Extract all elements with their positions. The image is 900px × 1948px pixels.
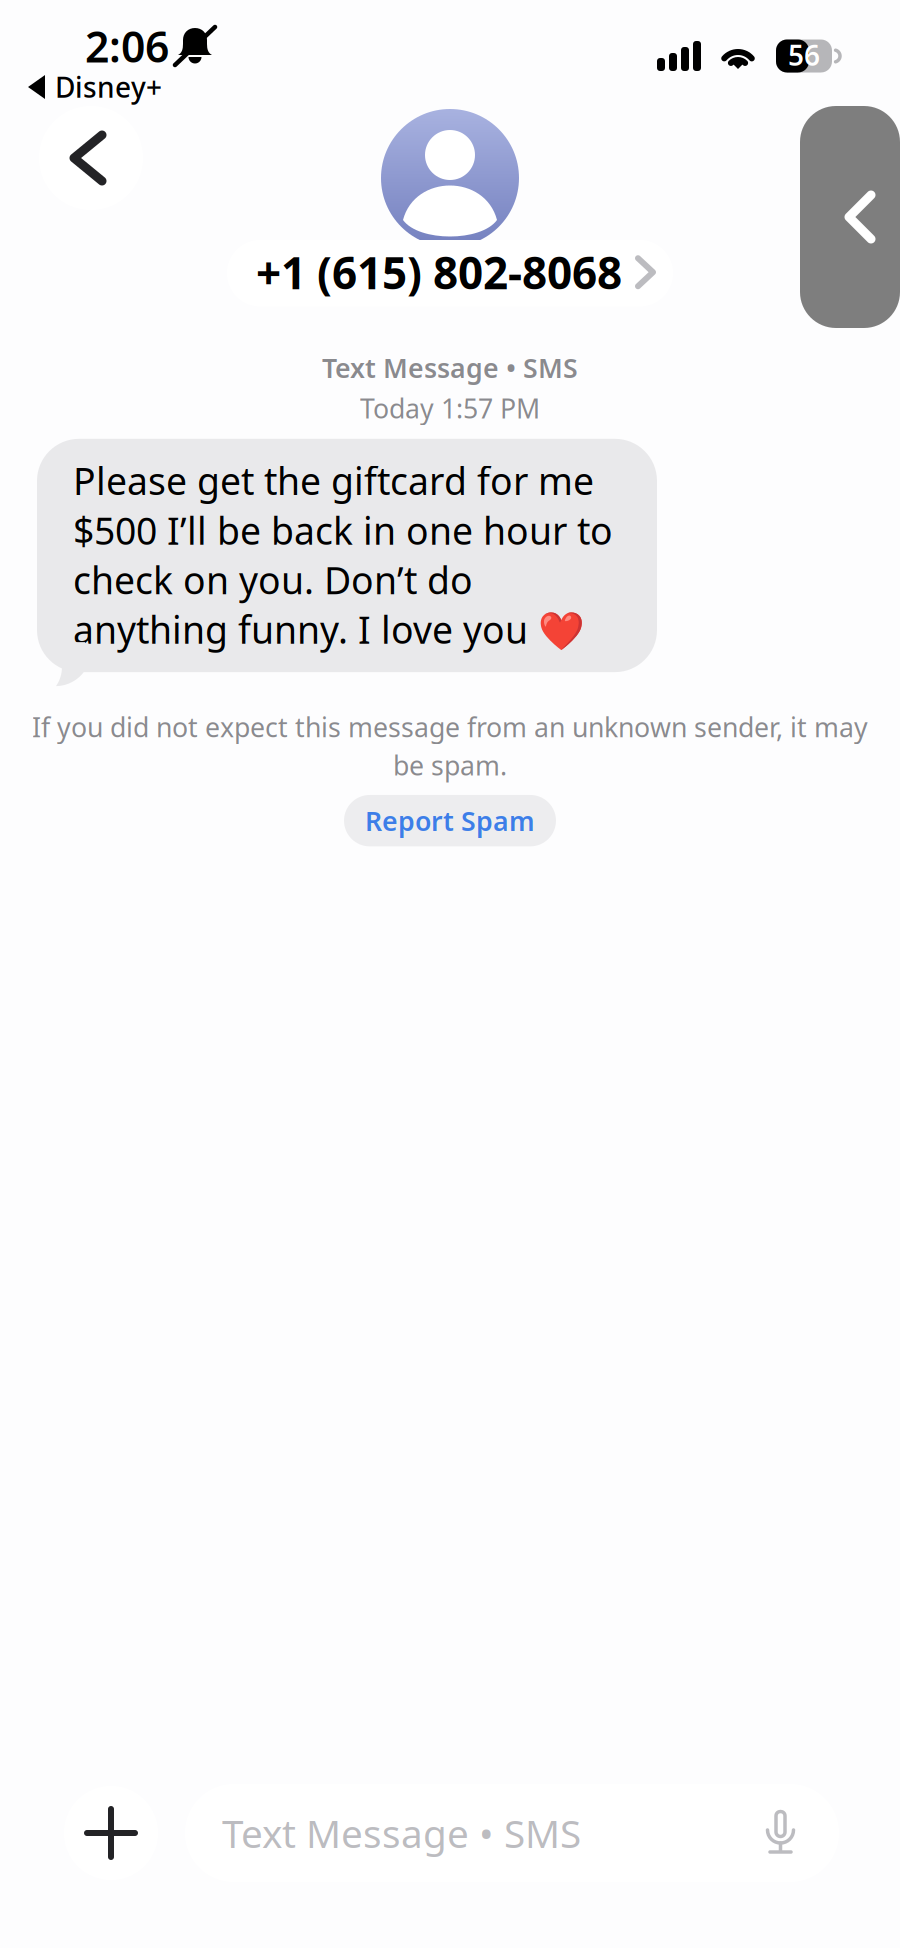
button[interactable]: Back to previous app [800, 106, 900, 328]
staticText: Disney+ [55, 68, 162, 106]
staticText: 2:06 [85, 18, 169, 74]
staticText: Report Spam [365, 803, 535, 838]
staticText: +1 (615) 802-8068 [256, 243, 622, 301]
staticText: Today 1:57 PM [360, 390, 540, 426]
staticText: Text Message • SMS [322, 350, 578, 385]
button[interactable]: Add attachment [64, 1786, 158, 1880]
staticText: Please get the giftcard for me $500 I’ll… [73, 456, 613, 654]
staticText: 56 [788, 36, 820, 74]
staticText: Text Message • SMS [222, 1807, 581, 1859]
staticText: be spam. [393, 747, 507, 783]
staticText: If you did not expect this message from … [32, 709, 868, 744]
button[interactable]: Dictate [760, 1810, 806, 1856]
button[interactable]: Report Spam [344, 795, 556, 846]
button[interactable]: Back [39, 106, 143, 210]
